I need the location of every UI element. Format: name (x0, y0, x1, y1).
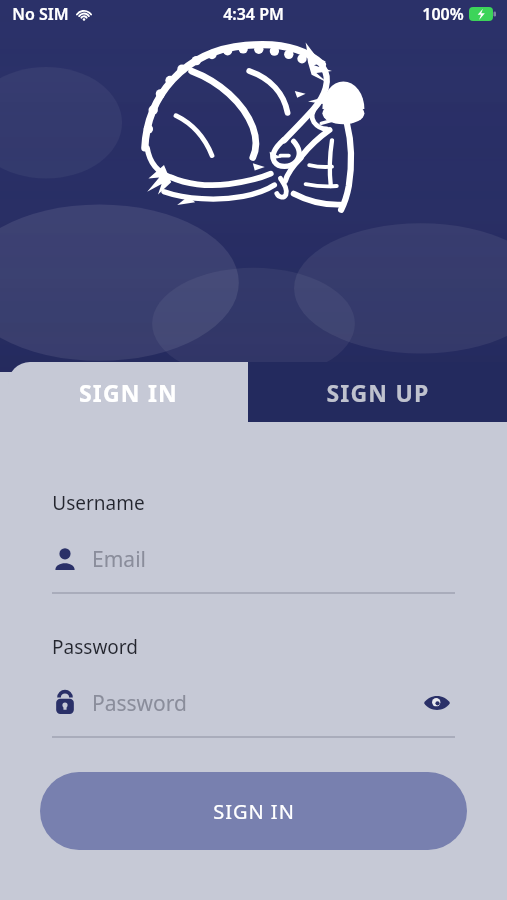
staticText: SIGN IN (213, 798, 295, 825)
staticText: 4:34 PM (223, 3, 284, 25)
button[interactable]: SIGN IN (40, 772, 467, 850)
staticText: SIGN UP (326, 377, 430, 408)
button[interactable]: SIGN UP (248, 362, 507, 422)
staticText: No SIM (12, 3, 69, 25)
staticText: Username (52, 490, 145, 516)
button[interactable]: Password (52, 682, 455, 724)
staticText: Password (52, 634, 138, 660)
staticText: Password (92, 689, 187, 718)
button[interactable]: Email (52, 538, 455, 580)
staticText: 100% (422, 3, 464, 25)
button[interactable]: SIGN IN (8, 362, 248, 422)
staticText: Email (92, 545, 146, 574)
staticText: SIGN IN (79, 377, 178, 408)
button[interactable]: Show password (419, 685, 455, 721)
